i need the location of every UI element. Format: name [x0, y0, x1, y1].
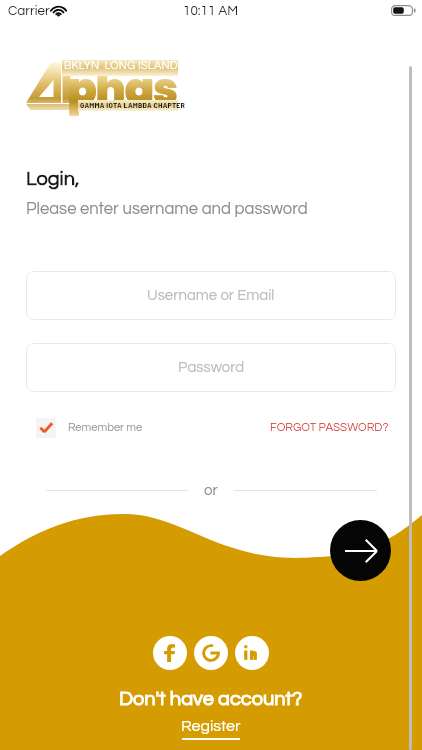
staticText: Don't have account? — [119, 689, 303, 710]
button[interactable]: Username or Email — [26, 271, 396, 320]
staticText: phas — [67, 58, 177, 116]
button[interactable]: FORGOT PASSWORD? — [270, 422, 389, 434]
staticText: Please enter username and password — [26, 200, 308, 217]
staticText: BKLYN LONG ISLAND — [64, 60, 178, 71]
button[interactable]: Sign in with Facebook — [153, 636, 187, 670]
staticText: Username or Email — [147, 288, 275, 303]
staticText: Carrier — [8, 4, 50, 18]
button[interactable]: Remember me — [36, 418, 143, 438]
staticText: GAMMA IOTA LAMBDA CHAPTER — [80, 100, 186, 110]
button[interactable]: Sign in with Google — [194, 636, 228, 670]
staticText: Remember me — [68, 422, 143, 434]
staticText: Password — [178, 360, 245, 375]
staticText: or — [204, 483, 218, 498]
button[interactable]: Sign in with LinkedIn — [235, 636, 269, 670]
button[interactable]: Password — [26, 343, 396, 392]
button[interactable]: Sign in — [330, 520, 391, 581]
staticText: Login, — [26, 169, 80, 190]
staticText: Register — [181, 718, 241, 734]
button[interactable]: Register — [181, 718, 241, 740]
staticText: 10:11 AM — [183, 4, 239, 18]
staticText: FORGOT PASSWORD? — [270, 422, 389, 434]
